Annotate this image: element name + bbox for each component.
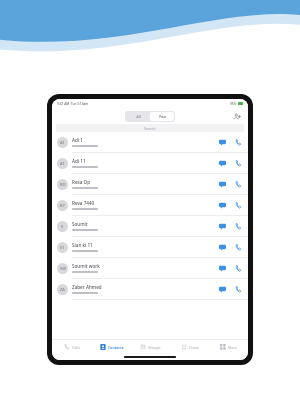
button[interactable]: Message Reva 7440 <box>217 200 227 210</box>
button[interactable]: SW <box>52 258 248 279</box>
staticText: Fav <box>159 114 166 119</box>
staticText: SW <box>60 266 66 271</box>
button[interactable]: All <box>126 112 150 121</box>
button[interactable]: Message Adi 1 <box>217 137 227 147</box>
button[interactable]: More <box>209 340 248 354</box>
staticText: Soumit work <box>72 263 100 269</box>
button[interactable]: S1 <box>52 237 248 258</box>
button[interactable]: Contacts <box>92 340 131 354</box>
button[interactable]: A1 <box>52 132 248 153</box>
button[interactable]: A1 <box>52 153 248 174</box>
button[interactable]: R7 <box>52 195 248 216</box>
button[interactable]: Message Adi 11 <box>217 158 227 168</box>
button[interactable]: Calls <box>52 340 92 354</box>
button[interactable]: Call Adi 11 <box>233 158 243 168</box>
button[interactable]: Call Adi 1 <box>233 137 243 147</box>
staticText: Contacts <box>108 345 124 350</box>
button[interactable]: Fav <box>150 112 174 121</box>
staticText: S <box>61 224 64 229</box>
button[interactable]: Call Soumit work <box>233 263 243 273</box>
button[interactable]: Message Soumit <box>217 221 227 231</box>
button[interactable]: Message Soumit work <box>217 263 227 273</box>
button[interactable]: Add contact <box>231 111 242 122</box>
button[interactable]: Call Resa Op <box>233 179 243 189</box>
staticText: RO <box>60 182 66 187</box>
button[interactable]: Call Sian ki 11 <box>233 242 243 252</box>
staticText: Zaber Ahmed <box>72 284 102 290</box>
button[interactable]: Message Resa Op <box>217 179 227 189</box>
staticText: Calls <box>72 345 80 350</box>
staticText: Resa Op <box>72 179 91 185</box>
button[interactable]: Call Reva 7440 <box>233 200 243 210</box>
staticText: Search <box>144 126 156 131</box>
button[interactable]: ZA <box>52 279 248 300</box>
staticText: S1 <box>60 245 65 250</box>
staticText: A1 <box>60 140 65 145</box>
staticText: Soumit <box>72 221 88 227</box>
staticText: All <box>136 114 141 119</box>
staticText: Sian ki 11 <box>72 242 93 248</box>
button[interactable]: Call Soumit <box>233 221 243 231</box>
staticText: 9:41 AM Tue 3:14am <box>57 102 89 106</box>
button[interactable]: S <box>52 216 248 237</box>
staticText: A1 <box>60 161 65 166</box>
button[interactable]: Chats <box>170 340 209 354</box>
staticText: ZA <box>60 287 65 292</box>
button[interactable]: Search <box>56 124 244 132</box>
staticText: Groups <box>148 345 161 350</box>
staticText: Adi 11 <box>72 158 86 164</box>
staticText: Reva 7440 <box>72 200 95 206</box>
staticText: 95% <box>230 102 237 106</box>
staticText: Chats <box>189 345 199 350</box>
button[interactable]: Groups <box>131 340 170 354</box>
button[interactable]: Message Zaber Ahmed <box>217 284 227 294</box>
button[interactable]: RO <box>52 174 248 195</box>
staticText: R7 <box>60 203 65 208</box>
staticText: More <box>228 345 237 350</box>
button[interactable]: Message Sian ki 11 <box>217 242 227 252</box>
button[interactable]: Call Zaber Ahmed <box>233 284 243 294</box>
staticText: Adi 1 <box>72 137 83 143</box>
